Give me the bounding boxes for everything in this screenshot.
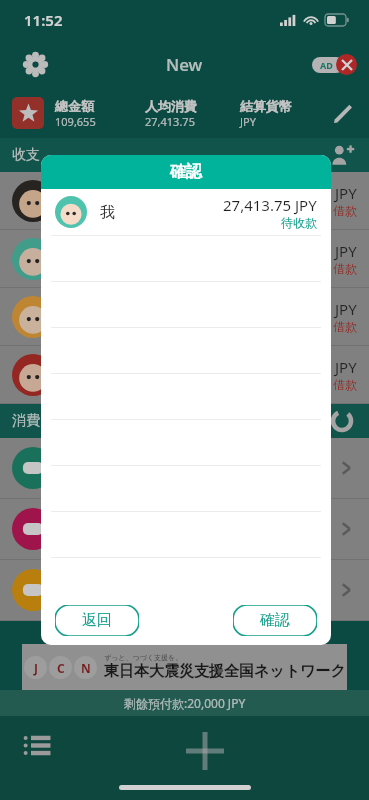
staticText: C (57, 660, 65, 676)
staticText: 總金額 (55, 98, 94, 114)
staticText: JPY (335, 357, 357, 377)
staticText: 109,655 (55, 114, 96, 129)
staticText: JPY (335, 241, 357, 261)
staticText: 剩餘預付款:20,000 JPY (124, 695, 246, 711)
staticText: JPY (335, 299, 357, 319)
staticText: 借款 (333, 203, 357, 218)
staticText: 收支 (12, 146, 40, 164)
staticText: JPY (335, 183, 357, 203)
staticText: 確認 (170, 162, 202, 182)
staticText: 借款 (333, 319, 357, 334)
staticText: 結算貨幣 (240, 98, 292, 114)
staticText: 人均消費 (145, 98, 197, 114)
staticText: 借款 (333, 261, 357, 276)
button[interactable]: JPY (0, 172, 369, 229)
button[interactable]: JPY (0, 288, 369, 345)
button[interactable]: JPY (0, 230, 369, 287)
button[interactable] (0, 499, 369, 559)
staticText: 東日本大震災支援全国ネットワーク (104, 662, 346, 681)
staticText: 27,413.75 (145, 114, 195, 129)
staticText: 消費 (12, 412, 40, 430)
button[interactable]: List (18, 726, 56, 764)
button[interactable]: Refresh (327, 406, 357, 436)
staticText: 11:52 (24, 10, 63, 30)
staticText: 我 (100, 203, 115, 222)
staticText: J (34, 660, 38, 676)
button[interactable]: JPY (0, 346, 369, 403)
button[interactable]: Edit (327, 98, 357, 128)
button[interactable]: 返回 (55, 605, 139, 636)
staticText: AD (320, 59, 333, 71)
button[interactable]: 我 (41, 189, 331, 235)
staticText: New (166, 53, 203, 76)
button[interactable] (0, 438, 369, 498)
button[interactable]: 確認 (233, 605, 317, 636)
button[interactable]: Close ad (304, 54, 357, 75)
staticText: 27,413.75 JPY (223, 195, 317, 215)
button[interactable] (0, 560, 369, 620)
staticText: 返回 (82, 611, 112, 630)
staticText: 確認 (260, 611, 290, 630)
staticText: 待收款 (281, 215, 317, 230)
staticText: JPY (240, 114, 256, 129)
staticText: 借款 (333, 377, 357, 392)
button[interactable]: Settings (18, 47, 52, 81)
button[interactable]: Add member (327, 140, 357, 170)
staticText: N (81, 660, 91, 676)
staticText: ずっと、つづく支援を。 (104, 653, 183, 662)
